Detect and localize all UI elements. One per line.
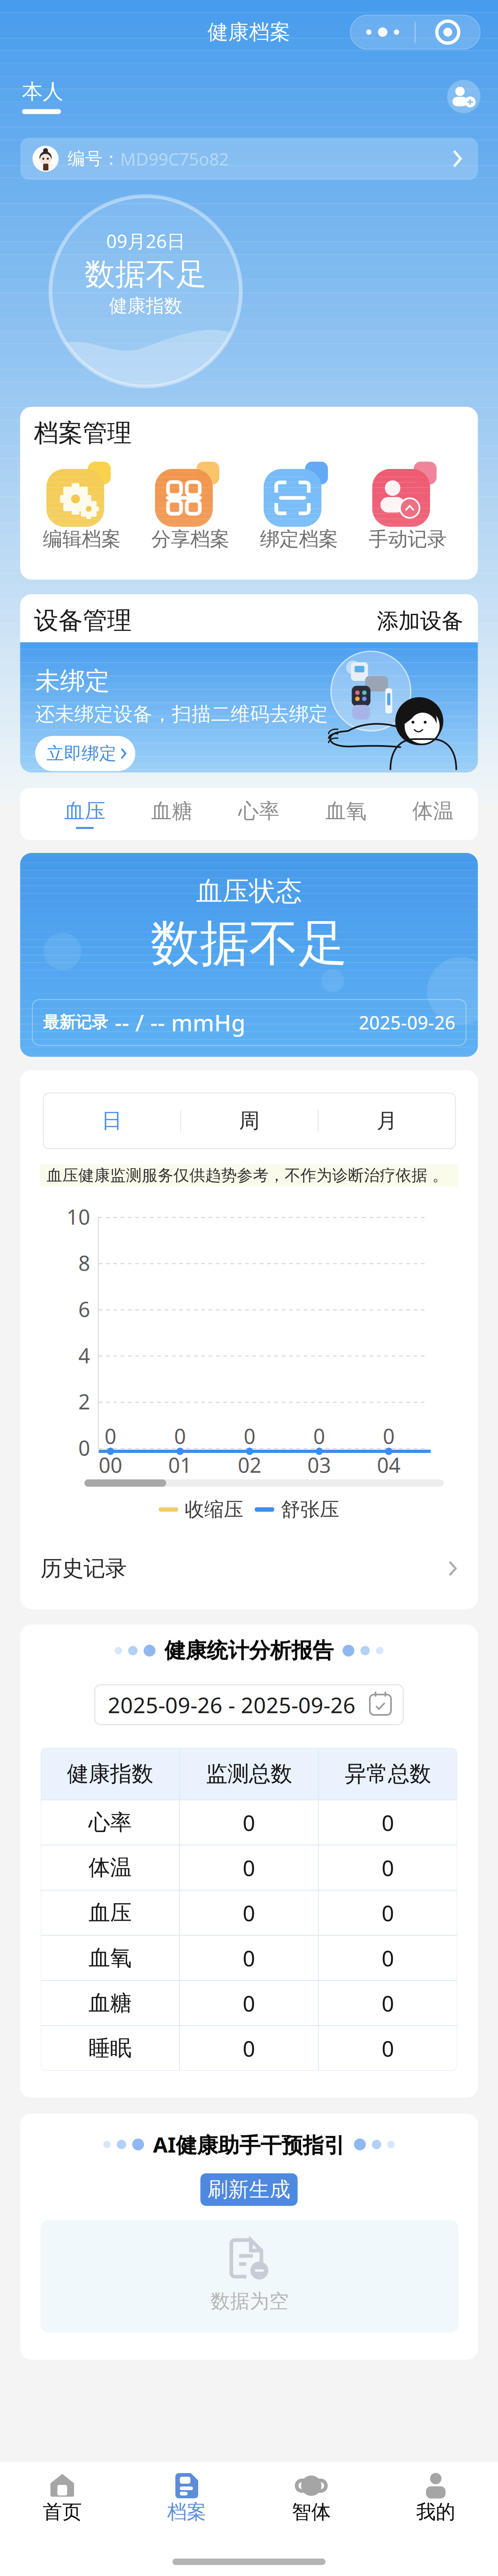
staticText: 编辑档案	[43, 527, 121, 551]
staticText: 0	[382, 1944, 394, 1972]
staticText: 健康档案	[207, 19, 290, 45]
staticText: 0	[243, 1944, 255, 1972]
staticText: 手动记录	[369, 527, 447, 551]
staticText: 健康统计分析报告	[164, 1638, 334, 1664]
button[interactable]: More options	[350, 15, 480, 49]
staticText: 历史记录	[40, 1555, 127, 1582]
staticText: 0	[243, 1898, 255, 1927]
button[interactable]: 立即绑定	[35, 736, 135, 771]
button[interactable]: 编辑档案	[27, 458, 136, 551]
staticText: 异常总数	[345, 1761, 431, 1787]
staticText: 最新记录	[43, 1012, 108, 1032]
button[interactable]: 智体	[249, 2473, 373, 2524]
staticText: 8	[78, 1249, 90, 1277]
staticText: 未绑定	[35, 666, 110, 696]
staticText: 档案管理	[34, 418, 132, 448]
staticText: 0	[243, 2034, 255, 2063]
button[interactable]: 血氧	[303, 788, 390, 840]
staticText: 绑定档案	[260, 527, 338, 551]
staticText: 4	[78, 1342, 90, 1369]
staticText: 2	[78, 1388, 90, 1415]
staticText: 01	[168, 1451, 192, 1478]
button[interactable]: 绑定档案	[245, 458, 353, 551]
staticText: 04	[377, 1451, 401, 1478]
staticText: 监测总数	[206, 1761, 292, 1787]
button[interactable]: 添加设备	[377, 608, 463, 634]
staticText: 0	[243, 1808, 255, 1837]
staticText: 我的	[416, 2500, 455, 2524]
staticText: 立即绑定	[47, 743, 117, 764]
staticText: 血压	[64, 798, 106, 824]
staticText: 心率	[88, 1809, 132, 1836]
button[interactable]: 日	[44, 1093, 180, 1149]
staticText: 收缩压	[185, 1497, 243, 1521]
staticText: 00	[99, 1451, 122, 1478]
staticText: 睡眠	[88, 2035, 132, 2062]
button[interactable]: 首页	[0, 2473, 124, 2524]
button[interactable]: 体温	[390, 788, 477, 840]
staticText: 健康指数	[67, 1761, 153, 1787]
staticText: 健康指数	[109, 295, 182, 317]
staticText: 首页	[43, 2500, 82, 2524]
staticText: 10	[67, 1203, 90, 1230]
staticText: 0	[243, 1853, 255, 1882]
staticText: 血压状态	[196, 875, 302, 908]
staticText: 数据不足	[151, 913, 347, 974]
button[interactable]: 我的	[373, 2473, 498, 2524]
staticText: 0	[313, 1422, 325, 1450]
staticText: 血氧	[325, 798, 367, 824]
staticText: 刷新生成	[207, 2177, 290, 2202]
staticText: 2025-09-26	[359, 1010, 455, 1035]
button[interactable]: 历史记录	[20, 1536, 478, 1601]
staticText: 0	[105, 1422, 116, 1450]
staticText: 0	[382, 1989, 394, 2017]
staticText: 心率	[238, 798, 280, 824]
staticText: -- / -- mmHg	[115, 1007, 246, 1038]
staticText: 周	[239, 1108, 260, 1133]
staticText: 血压健康监测服务仅供趋势参考，不作为诊断治疗依据 。	[47, 1166, 448, 1185]
staticText: 02	[238, 1451, 261, 1478]
button[interactable]: 编号：	[20, 138, 478, 180]
button[interactable]: 刷新生成	[200, 2173, 298, 2206]
staticText: 档案	[167, 2500, 206, 2524]
button[interactable]: 血糖	[128, 788, 215, 840]
staticText: 血糖	[151, 798, 193, 824]
staticText: 6	[78, 1295, 90, 1323]
staticText: 0	[243, 1989, 255, 2017]
button[interactable]: 血压	[41, 788, 128, 840]
button[interactable]: 分享档案	[136, 458, 245, 551]
staticText: 编号：	[68, 148, 120, 169]
staticText: 本人	[22, 79, 63, 104]
staticText: 日	[102, 1108, 122, 1133]
button[interactable]: 本人	[22, 79, 63, 114]
button[interactable]: 月	[319, 1093, 455, 1149]
staticText: 0	[174, 1422, 186, 1450]
staticText: 0	[78, 1434, 90, 1461]
button[interactable]: 周	[181, 1093, 318, 1149]
staticText: 添加设备	[377, 608, 463, 634]
button[interactable]: 心率	[215, 788, 303, 840]
staticText: 数据为空	[211, 2289, 289, 2313]
staticText: 舒张压	[281, 1497, 339, 1521]
staticText: 0	[382, 1853, 394, 1882]
staticText: 血压	[88, 1899, 132, 1926]
staticText: 月	[377, 1108, 397, 1133]
staticText: 0	[383, 1422, 395, 1450]
staticText: 血氧	[88, 1945, 132, 1971]
button[interactable]: Add family member	[447, 80, 481, 113]
staticText: 0	[382, 2034, 394, 2063]
button[interactable]: 2025-09-26 - 2025-09-26	[95, 1685, 403, 1725]
staticText: 还未绑定设备，扫描二维码去绑定	[35, 702, 328, 726]
button[interactable]: 手动记录	[353, 458, 462, 551]
staticText: 0	[382, 1898, 394, 1927]
staticText: 智体	[292, 2500, 331, 2524]
staticText: AI健康助手干预指引	[153, 2130, 345, 2159]
staticText: 数据不足	[85, 256, 207, 293]
staticText: 体温	[412, 798, 454, 824]
staticText: 2025-09-26 - 2025-09-26	[108, 1690, 356, 1719]
staticText: 09月26日	[106, 229, 185, 253]
button[interactable]: 档案	[124, 2473, 249, 2524]
staticText: MD99C75o82	[120, 147, 229, 170]
staticText: 03	[307, 1451, 331, 1478]
staticText: 0	[244, 1422, 256, 1450]
